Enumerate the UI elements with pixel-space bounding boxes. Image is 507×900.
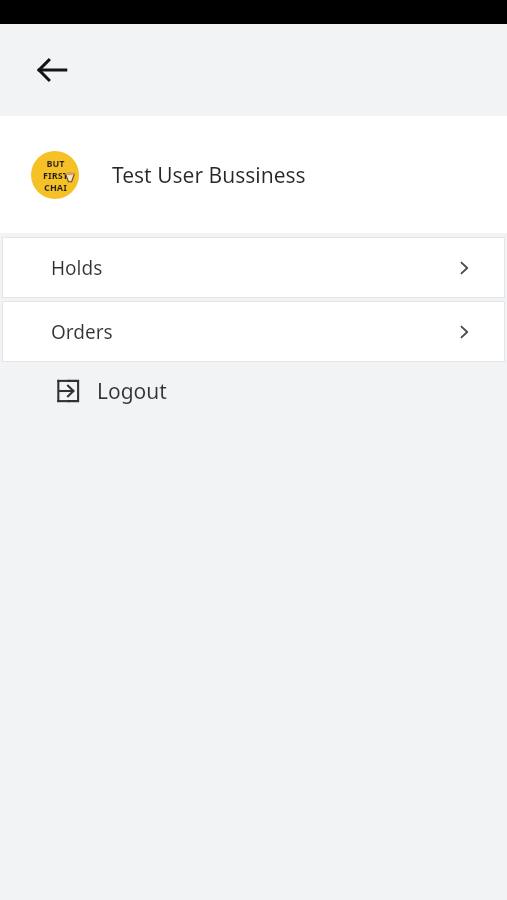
staticText: CHAI [44, 181, 67, 193]
staticText: Test User Bussiness [112, 161, 306, 190]
staticText: FIRST [43, 169, 68, 181]
staticText: BUT [46, 157, 65, 169]
staticText: Orders [51, 319, 113, 345]
staticText: Holds [51, 255, 103, 281]
staticText: Logout [97, 377, 167, 406]
button[interactable]: Holds [2, 237, 505, 298]
button[interactable]: Orders [2, 301, 505, 362]
other: Logout [57, 380, 79, 402]
button[interactable]: Logout [0, 362, 507, 420]
button[interactable]: Back [26, 44, 78, 96]
